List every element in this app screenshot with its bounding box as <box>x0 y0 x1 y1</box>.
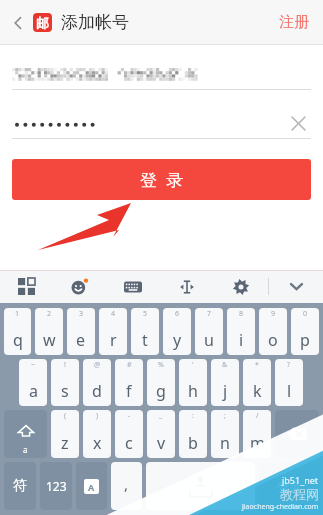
staticText: c <box>125 432 133 454</box>
button[interactable]: Space <box>146 462 255 510</box>
staticText: _ <box>159 411 163 421</box>
button[interactable]: Hide keyboard <box>269 270 323 303</box>
staticText: ! <box>64 360 66 370</box>
staticText: l <box>287 380 292 402</box>
staticText: j <box>223 380 228 402</box>
button[interactable]: ' <box>179 359 207 406</box>
staticText: y <box>173 329 182 351</box>
staticText: v <box>157 432 166 454</box>
button[interactable]: * <box>243 359 271 406</box>
button[interactable]: - <box>115 410 143 458</box>
staticText: r <box>110 329 117 351</box>
button[interactable]: 3 <box>67 308 95 355</box>
button[interactable]: ? <box>275 359 303 406</box>
button[interactable]: 8 <box>227 308 255 355</box>
button[interactable]: : <box>179 410 207 458</box>
staticText: 符 <box>13 477 27 495</box>
button[interactable]: ; <box>211 410 239 458</box>
button[interactable]: , <box>111 462 142 510</box>
button[interactable]: Settings <box>214 270 268 303</box>
staticText: 6 <box>175 309 180 319</box>
button[interactable]: 0 <box>291 308 319 355</box>
staticText: z <box>61 432 69 454</box>
staticText: 2 <box>47 309 52 319</box>
button[interactable]: % <box>147 359 175 406</box>
staticText: w <box>43 329 56 351</box>
staticText: a <box>23 444 28 455</box>
button[interactable]: Clear password <box>285 112 311 134</box>
button[interactable]: ( <box>51 410 79 458</box>
staticText: 123 <box>46 478 67 494</box>
staticText: ' <box>192 360 194 370</box>
button[interactable]: 注册 <box>275 7 313 38</box>
staticText: 0 <box>303 309 308 319</box>
staticText: t <box>142 329 148 351</box>
staticText: A <box>88 481 95 493</box>
staticText: n <box>220 432 230 454</box>
staticText: 8 <box>239 309 244 319</box>
staticText: ( <box>64 411 67 421</box>
button[interactable]: ! <box>51 359 79 406</box>
staticText: q <box>13 329 23 351</box>
staticText: 3 <box>79 309 84 319</box>
staticText: g <box>156 380 166 402</box>
staticText: 注册 <box>279 13 309 32</box>
staticText: a <box>29 380 38 402</box>
staticText: s <box>61 380 69 402</box>
staticText: i <box>239 329 244 351</box>
button[interactable]: 符 <box>4 462 36 510</box>
button[interactable]: Enter <box>259 462 319 510</box>
button[interactable]: Back <box>5 10 31 36</box>
staticText: h <box>188 380 198 402</box>
staticText: * <box>255 360 259 370</box>
staticText: : <box>192 411 194 421</box>
staticText: ; <box>224 411 226 421</box>
button[interactable]: Apps <box>0 270 53 303</box>
staticText: k <box>253 380 262 402</box>
button[interactable]: Cursor move <box>160 270 214 303</box>
button[interactable]: @ <box>83 359 111 406</box>
button[interactable]: Emoji <box>53 270 106 303</box>
button[interactable]: Shift <box>4 410 47 458</box>
button[interactable]: 123 <box>40 462 72 510</box>
button[interactable]: ) <box>83 410 111 458</box>
button[interactable]: / <box>243 410 271 458</box>
button[interactable]: _ <box>147 410 175 458</box>
staticText: d <box>92 380 102 402</box>
staticText: 4 <box>111 309 116 319</box>
staticText: p <box>300 329 310 351</box>
button[interactable]: 6 <box>163 308 191 355</box>
staticText: @ <box>94 360 101 370</box>
button[interactable]: ~ <box>19 359 47 406</box>
staticText: 9 <box>271 309 276 319</box>
staticText: ) <box>96 411 99 421</box>
staticText: / <box>256 411 259 421</box>
button[interactable]: 5 <box>131 308 159 355</box>
staticText: 教程网 <box>280 486 319 502</box>
button[interactable]: # <box>115 359 143 406</box>
button[interactable]: & <box>211 359 239 406</box>
staticText: x <box>93 432 102 454</box>
button[interactable]: 登 录 <box>12 159 311 200</box>
button[interactable]: 7 <box>195 308 223 355</box>
staticText: jiaocheng-chedian.com <box>242 502 319 512</box>
staticText: jb51_net <box>282 474 319 486</box>
staticText: 7 <box>207 309 212 319</box>
staticText: 登录 <box>277 479 301 494</box>
staticText: 登 录 <box>140 168 183 191</box>
staticText: o <box>268 329 278 351</box>
button[interactable]: Backspace <box>275 410 319 458</box>
staticText: % <box>158 360 164 370</box>
button[interactable]: 9 <box>259 308 287 355</box>
button[interactable]: 4 <box>99 308 127 355</box>
staticText: ? <box>287 360 291 370</box>
staticText: e <box>76 329 86 351</box>
button[interactable]: 2 <box>35 308 63 355</box>
button[interactable]: 1 <box>4 308 31 355</box>
staticText: 1 <box>15 309 20 319</box>
staticText: 5 <box>143 309 148 319</box>
staticText: m <box>250 432 265 454</box>
button[interactable]: Switch language <box>76 462 107 510</box>
staticText: & <box>222 360 228 370</box>
button[interactable]: Keyboard layout <box>106 270 160 303</box>
